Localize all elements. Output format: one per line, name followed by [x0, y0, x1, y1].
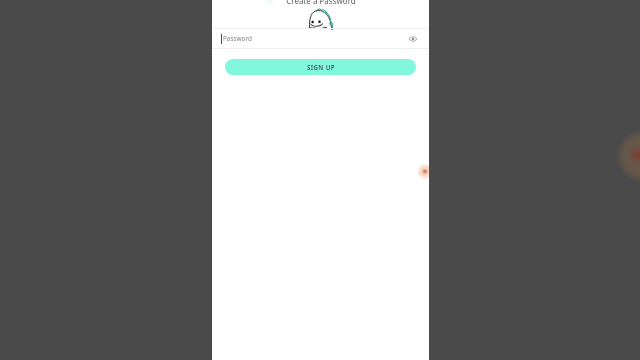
button[interactable]: SIGN UP [225, 59, 416, 75]
staticText: Create a Password [286, 0, 356, 6]
button[interactable]: Password [212, 28, 429, 49]
button[interactable]: Show password [406, 32, 419, 45]
staticText: SIGN UP [307, 63, 335, 71]
staticText: Password [223, 34, 252, 43]
